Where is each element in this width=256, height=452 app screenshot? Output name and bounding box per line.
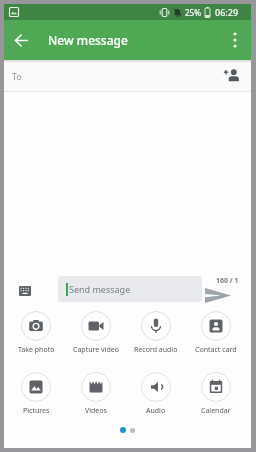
button[interactable]: Contact card [186, 311, 246, 356]
staticText: Pictures [23, 406, 50, 416]
staticText: Videos [85, 406, 107, 416]
staticText: 25% [185, 7, 201, 18]
button[interactable]: Record audio [126, 311, 186, 356]
button[interactable]: Audio [126, 372, 186, 417]
staticText: 06:29 [215, 6, 239, 18]
staticText: Calendar [201, 406, 231, 416]
button[interactable] [223, 67, 240, 84]
button[interactable]: Videos [66, 372, 126, 417]
button[interactable] [219, 20, 251, 60]
button[interactable]: Pictures [6, 372, 66, 417]
staticText: To [12, 70, 22, 82]
button[interactable] [205, 288, 231, 303]
button[interactable]: Send message [58, 276, 202, 302]
staticText: 160 / 1 [216, 276, 239, 286]
button[interactable] [19, 286, 31, 296]
staticText: Take photo [18, 345, 55, 355]
staticText: New message [48, 32, 128, 48]
button[interactable]: Take photo [6, 311, 66, 356]
button[interactable]: Capture video [66, 311, 126, 356]
button[interactable]: Calendar [186, 372, 246, 417]
staticText: Capture video [73, 345, 119, 355]
button[interactable] [4, 20, 38, 60]
staticText: Send message [69, 283, 131, 295]
button[interactable]: To [4, 60, 251, 91]
staticText: Contact card [195, 345, 237, 355]
staticText: Audio [146, 406, 166, 416]
staticText: Record audio [134, 345, 178, 355]
